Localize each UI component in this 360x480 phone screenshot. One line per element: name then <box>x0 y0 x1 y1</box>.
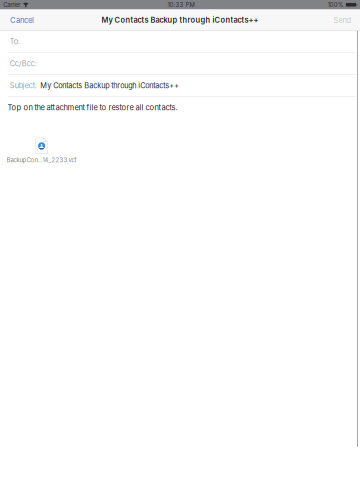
staticText: 10:33 PM <box>167 1 194 8</box>
button[interactable]: BackupCon…14_2233.vcf attachment <box>0 112 77 164</box>
staticText: Subject: <box>10 81 37 90</box>
staticText: Cc/Bcc: <box>10 59 37 68</box>
staticText: My Contacts Backup through iContacts++ <box>101 16 258 25</box>
button[interactable]: Cc/Bcc: <box>0 53 360 75</box>
staticText: Cancel <box>10 16 34 25</box>
staticText: To: <box>10 37 20 46</box>
staticText: BackupCon…14_2233.vcf <box>7 157 77 164</box>
staticText: Top on the attachment file to restore al… <box>8 103 178 112</box>
staticText: My Contacts Backup through iContacts++ <box>40 81 179 90</box>
staticText: Send <box>333 16 351 25</box>
button[interactable]: Cancel <box>0 10 40 31</box>
button[interactable]: To: <box>0 31 360 53</box>
staticText: 100% <box>328 1 344 8</box>
button[interactable]: Send <box>327 10 360 31</box>
staticText: Carrier <box>3 1 20 8</box>
button[interactable]: Subject: <box>0 75 360 97</box>
